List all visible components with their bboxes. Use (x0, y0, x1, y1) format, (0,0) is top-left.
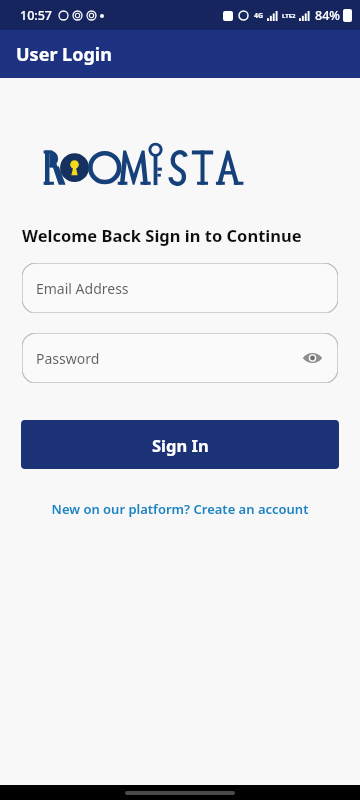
staticText: Welcome Back Sign in to Continue (22, 224, 302, 246)
staticText: 10:57 (20, 7, 53, 24)
staticText: Email Address (36, 279, 129, 298)
staticText: 84% (315, 7, 340, 24)
staticText: LTE2 (282, 12, 296, 20)
staticText: 4G (254, 11, 264, 21)
button[interactable]: Sign In (21, 420, 339, 469)
button[interactable]: Show password (296, 342, 328, 374)
staticText: Sign In (152, 434, 209, 456)
button[interactable]: New on our platform? Create an account (0, 496, 360, 522)
staticText: Password (36, 349, 100, 368)
staticText: User Login (16, 42, 112, 67)
button[interactable]: Email Address (22, 263, 338, 313)
button[interactable]: Password (22, 333, 338, 383)
